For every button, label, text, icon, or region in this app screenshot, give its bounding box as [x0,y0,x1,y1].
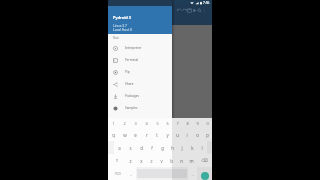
staticText: s [129,145,132,151]
button[interactable]: 2 [119,118,130,128]
button[interactable]: Share [108,78,172,90]
staticText: i [186,132,188,138]
button[interactable]: d [136,141,147,154]
button[interactable]: w [119,128,130,141]
staticText: u [176,132,179,138]
staticText: Run [113,36,119,40]
staticText: v [160,158,163,164]
button[interactable]: 5 [152,118,162,128]
button[interactable]: ⌫ [196,154,212,167]
button[interactable]: Interpreter [108,42,172,54]
staticText: j [181,145,183,151]
staticText: d [140,145,143,151]
staticText: 6 [166,121,169,126]
button[interactable]: b [166,154,176,167]
staticText: 8 [186,121,189,126]
button[interactable]: Search [197,8,202,20]
staticText: n [180,158,183,164]
button[interactable]: s [125,141,136,154]
button[interactable]: r [141,128,152,141]
staticText: Interpreter [125,46,142,50]
button[interactable]: a [114,141,125,154]
button[interactable]: 7 [172,118,182,128]
button[interactable]: Run [192,8,197,20]
staticText: o [196,132,199,138]
button[interactable]: i [182,128,192,141]
staticText: h [171,145,174,151]
button[interactable]: 1 [108,118,119,128]
button[interactable]: 4 [141,118,152,128]
staticText: 2 [123,121,126,126]
staticText: 1 [112,121,115,126]
staticText: ⇧ [115,158,119,163]
staticText: 7 [176,121,179,126]
button[interactable]: m [186,154,196,167]
staticText: z [129,158,132,164]
button[interactable]: Save [187,8,192,20]
button[interactable]: 3 [130,118,141,128]
button[interactable]: n [176,154,186,167]
staticText: 3 [134,121,137,126]
staticText: Share [125,82,134,86]
staticText: , [130,171,132,177]
staticText: g [161,145,164,151]
staticText: b [170,158,173,164]
staticText: l [201,145,203,151]
button[interactable]: p [202,128,212,141]
button[interactable]: e [130,128,141,141]
button[interactable]: y [162,128,172,141]
button[interactable]: 9 [192,118,202,128]
staticText: Samples [125,106,138,110]
button[interactable]: ⇧ [108,154,125,167]
button[interactable]: t [152,128,162,141]
button[interactable]: g [157,141,167,154]
staticText: Terminal [125,58,139,62]
staticText: r [146,132,148,138]
staticText: f [151,145,153,151]
button[interactable]: Space [137,169,187,178]
button[interactable]: Enter [201,172,209,180]
staticText: a [118,145,121,151]
staticText: Linux 3.7 [113,23,127,27]
staticText: 5 [156,121,159,126]
staticText: c [150,158,153,164]
staticText: Local Host 0 [113,27,132,31]
button[interactable]: c [146,154,156,167]
button[interactable]: u [172,128,182,141]
staticText: q [112,132,115,138]
button[interactable]: Redo [182,8,187,20]
button[interactable]: x [136,154,146,167]
button[interactable]: z [125,154,136,167]
staticText: w [123,132,127,138]
button[interactable]: j [177,141,187,154]
staticText: 4 [145,121,148,126]
button[interactable]: v [156,154,166,167]
staticText: y [166,132,169,138]
button[interactable]: 8 [182,118,192,128]
button[interactable]: Samples [108,102,172,114]
staticText: t [156,132,158,138]
button[interactable]: 0 [202,118,212,128]
button[interactable]: q [108,128,119,141]
staticText: Packages [125,94,140,98]
staticText: 9 [196,121,199,126]
button[interactable]: Terminal [108,54,172,66]
button[interactable]: , [126,167,136,180]
button[interactable]: Pip [108,66,172,78]
staticText: m [189,158,194,164]
staticText: 0 [206,121,209,126]
staticText: e [134,132,137,138]
button[interactable]: ?123 [108,167,126,180]
staticText: p [206,132,209,138]
button[interactable]: h [167,141,177,154]
button[interactable]: 6 [162,118,172,128]
button[interactable]: k [187,141,197,154]
button[interactable]: l [197,141,207,154]
button[interactable]: Packages [108,90,172,102]
staticText: Pydroid 3 [113,15,132,20]
button[interactable]: Undo [177,8,182,20]
button[interactable]: f [147,141,157,154]
button[interactable]: o [192,128,202,141]
